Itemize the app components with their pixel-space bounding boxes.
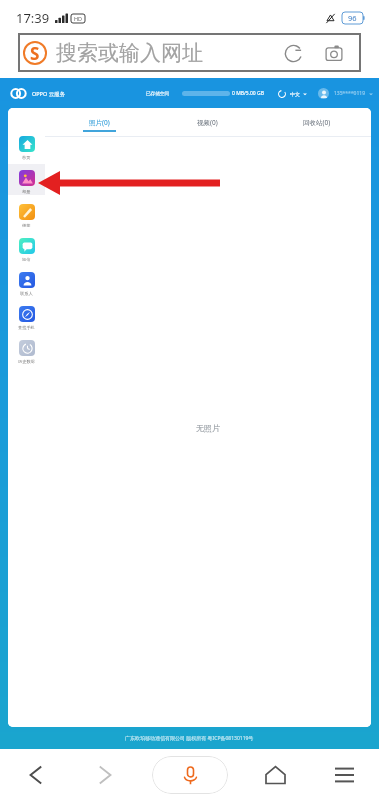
button[interactable]: 便签 (8, 198, 45, 229)
staticText: 首页 (22, 155, 31, 160)
staticText: 中文 (290, 91, 300, 97)
button[interactable]: 视频(0) (153, 108, 262, 137)
button[interactable]: 首页 (8, 130, 45, 161)
staticText: 联系人 (20, 291, 33, 296)
button[interactable]: 历史数据 (8, 334, 45, 365)
staticText: 135****0119 (334, 90, 366, 97)
staticText: 短信 (22, 257, 31, 262)
button[interactable]: 中文 (290, 91, 307, 97)
staticText: 0 MB/5.00 GB (232, 90, 264, 97)
staticText: 历史数据 (18, 359, 35, 364)
button[interactable]: Refresh (281, 41, 305, 65)
button[interactable]: 回收站(0) (262, 108, 371, 137)
staticText: 已存储空间 (146, 91, 169, 97)
button[interactable]: Back (22, 762, 48, 788)
staticText: 96 (348, 13, 357, 23)
staticText: 17:39 (16, 9, 50, 27)
button[interactable]: Sync (278, 90, 286, 98)
button[interactable]: Voice search (152, 756, 228, 794)
staticText: 查找手机 (18, 325, 35, 330)
button[interactable]: 照片(0) (45, 108, 153, 137)
staticText: 回收站(0) (303, 118, 331, 127)
staticText: S (30, 42, 40, 65)
button[interactable]: 相册 (8, 164, 45, 195)
button[interactable]: Menu (331, 762, 357, 788)
staticText: 便签 (22, 223, 31, 228)
staticText: 广东欧珀移动通信有限公司 版权所有 粤ICP备08130119号 (125, 735, 254, 742)
button[interactable]: Home (262, 762, 288, 788)
button[interactable]: 联系人 (8, 266, 45, 297)
button[interactable]: Forward (92, 762, 118, 788)
staticText: 视频(0) (197, 118, 218, 127)
staticText: OPPO 云服务 (32, 90, 66, 98)
staticText: 相册 (22, 189, 31, 194)
staticText: 照片(0) (89, 118, 110, 127)
button[interactable]: S (23, 33, 346, 72)
button[interactable]: Camera (322, 41, 346, 65)
staticText: HD (74, 15, 83, 22)
button[interactable]: 135****0119 (318, 88, 373, 99)
button[interactable]: 短信 (8, 232, 45, 263)
button[interactable]: 查找手机 (8, 300, 45, 331)
staticText: 无照片 (196, 423, 220, 433)
staticText: 搜索或输入网址 (56, 40, 203, 66)
